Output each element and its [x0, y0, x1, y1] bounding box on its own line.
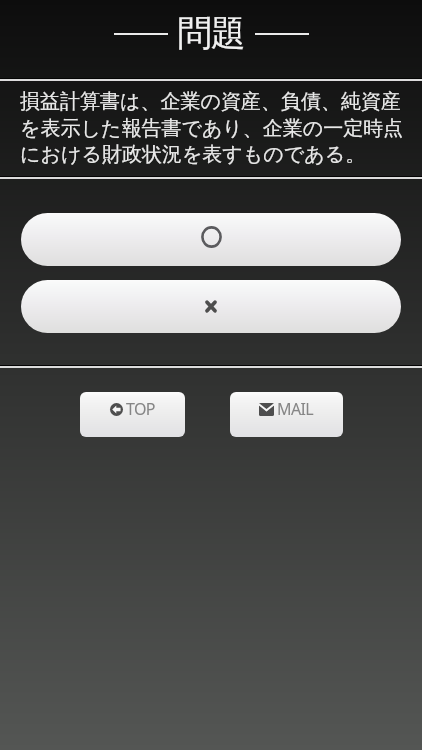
staticText: 問題	[178, 11, 245, 55]
button[interactable]: MAIL	[230, 392, 343, 437]
staticText: 損益計算書は、企業の資産、負債、純資産を表示した報告書であり、企業の一定時点にお…	[20, 89, 408, 167]
button[interactable]: TOP	[80, 392, 185, 437]
button[interactable]: Maru - correct	[21, 213, 401, 266]
button[interactable]: Batsu - wrong	[21, 280, 401, 333]
staticText: MAIL	[277, 398, 314, 420]
staticText: TOP	[126, 398, 155, 420]
